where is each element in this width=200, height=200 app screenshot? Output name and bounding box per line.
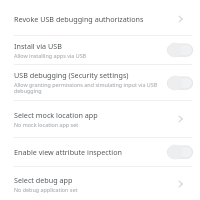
staticText: Enable view attribute inspection <box>14 147 122 157</box>
button[interactable]: USB debugging (Security settings) <box>0 65 200 100</box>
staticText: No mock location app set <box>14 121 79 128</box>
button[interactable]: Enable view attribute inspection <box>0 138 200 166</box>
other: Toggle <box>167 42 193 58</box>
other: Open <box>167 172 193 195</box>
other: Open <box>167 106 193 132</box>
button[interactable]: Install via USB <box>0 36 200 64</box>
staticText: USB debugging (Security settings) <box>14 70 129 80</box>
button[interactable]: Select debug app <box>0 167 200 200</box>
staticText: Select debug app <box>14 175 73 185</box>
other: Open <box>167 6 193 32</box>
other: Toggle <box>167 75 193 91</box>
staticText: Select mock location app <box>14 110 98 120</box>
staticText: Allow granting permissions and simulatin… <box>14 81 163 95</box>
staticText: No debug application set <box>14 186 78 193</box>
staticText: Allow installing apps via USB <box>14 52 87 59</box>
staticText: Install via USB <box>14 41 62 51</box>
button[interactable]: Revoke USB debugging authorizations <box>0 4 200 35</box>
staticText: Revoke USB debugging authorizations <box>14 14 144 24</box>
other: Toggle <box>167 144 193 160</box>
button[interactable]: Select mock location app <box>0 101 200 137</box>
